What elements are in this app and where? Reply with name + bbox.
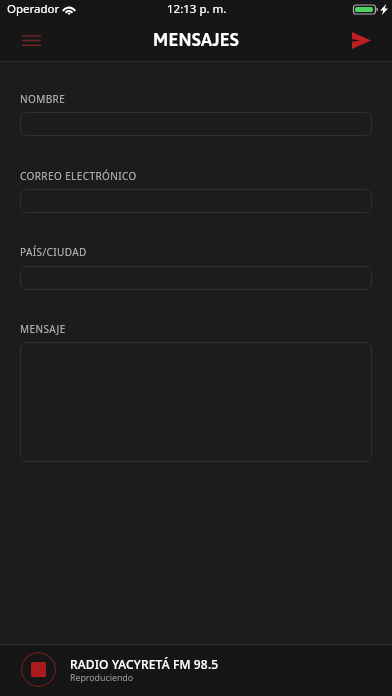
staticText: 12:13 p. m. xyxy=(167,1,227,17)
staticText: PAÍS/CIUDAD xyxy=(20,245,87,259)
button[interactable]: Send xyxy=(342,21,380,59)
button[interactable]: Stop xyxy=(21,652,56,687)
staticText: Reproduciendo xyxy=(70,672,134,684)
button[interactable]: Now playing: RADIO YACYRETA FM 98.5 xyxy=(0,645,392,696)
staticText: RADIO YACYRETÁ FM 98.5 xyxy=(70,656,219,672)
staticText: MENSAJES xyxy=(153,29,240,50)
staticText: NOMBRE xyxy=(20,92,66,106)
button[interactable]: CORREO ELECTRÓNICO xyxy=(20,189,372,213)
button[interactable]: PAÍS/CIUDAD xyxy=(20,266,372,290)
staticText: MENSAJE xyxy=(20,322,66,336)
button[interactable]: Menu xyxy=(12,21,50,59)
staticText: CORREO ELECTRÓNICO xyxy=(20,169,137,183)
button[interactable]: NOMBRE xyxy=(20,112,372,136)
staticText: Operador xyxy=(7,1,60,17)
